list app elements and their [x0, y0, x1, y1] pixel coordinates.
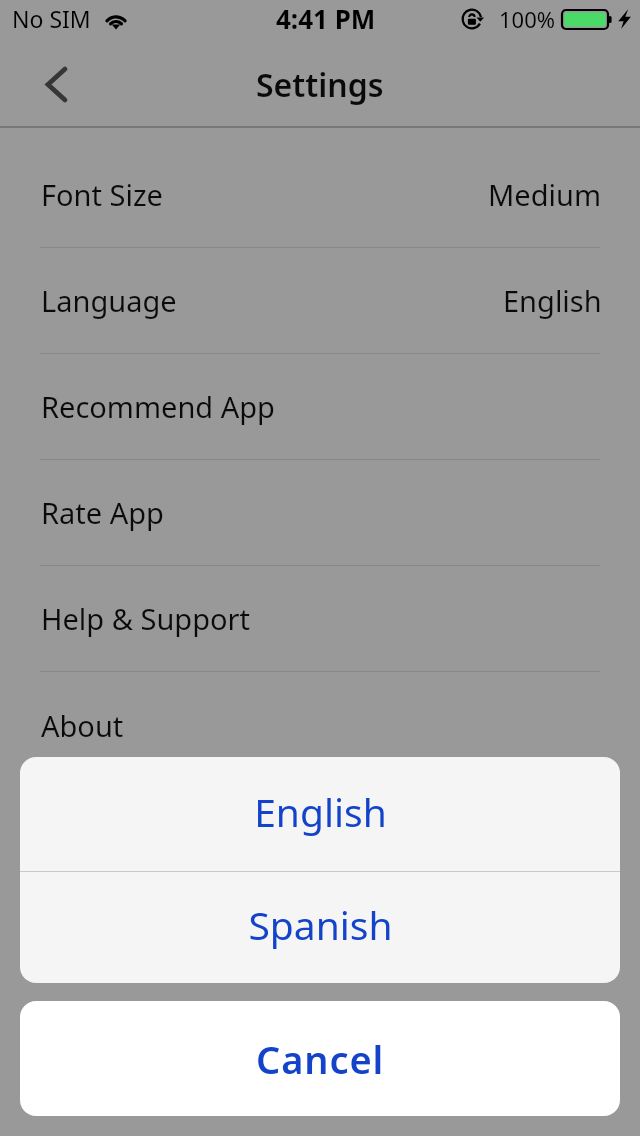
- button[interactable]: Font Size: [0, 142, 640, 248]
- staticText: Font Size: [41, 175, 163, 214]
- staticText: Spanish: [248, 898, 393, 951]
- staticText: Settings: [256, 63, 384, 107]
- staticText: No SIM: [12, 3, 91, 34]
- staticText: Medium: [488, 175, 602, 214]
- staticText: Help & Support: [41, 599, 250, 638]
- button[interactable]: Rate App: [0, 460, 640, 566]
- staticText: Recommend App: [41, 387, 275, 426]
- staticText: About: [41, 706, 124, 745]
- button[interactable]: Language: [0, 248, 640, 354]
- staticText: English: [254, 785, 387, 838]
- button[interactable]: Back: [0, 48, 100, 128]
- button[interactable]: English: [20, 757, 620, 871]
- button[interactable]: Cancel: [20, 1001, 620, 1116]
- button[interactable]: Dismiss: [0, 0, 640, 1136]
- button[interactable]: About: [0, 672, 640, 778]
- staticText: Cancel: [256, 1033, 385, 1085]
- staticText: 4:41 PM: [276, 1, 376, 36]
- button[interactable]: Spanish: [20, 872, 620, 983]
- staticText: Rate App: [41, 493, 164, 532]
- button[interactable]: Help & Support: [0, 566, 640, 672]
- staticText: Language: [41, 281, 177, 320]
- staticText: 100%: [499, 4, 556, 34]
- button[interactable]: Recommend App: [0, 354, 640, 460]
- staticText: English: [503, 281, 602, 320]
